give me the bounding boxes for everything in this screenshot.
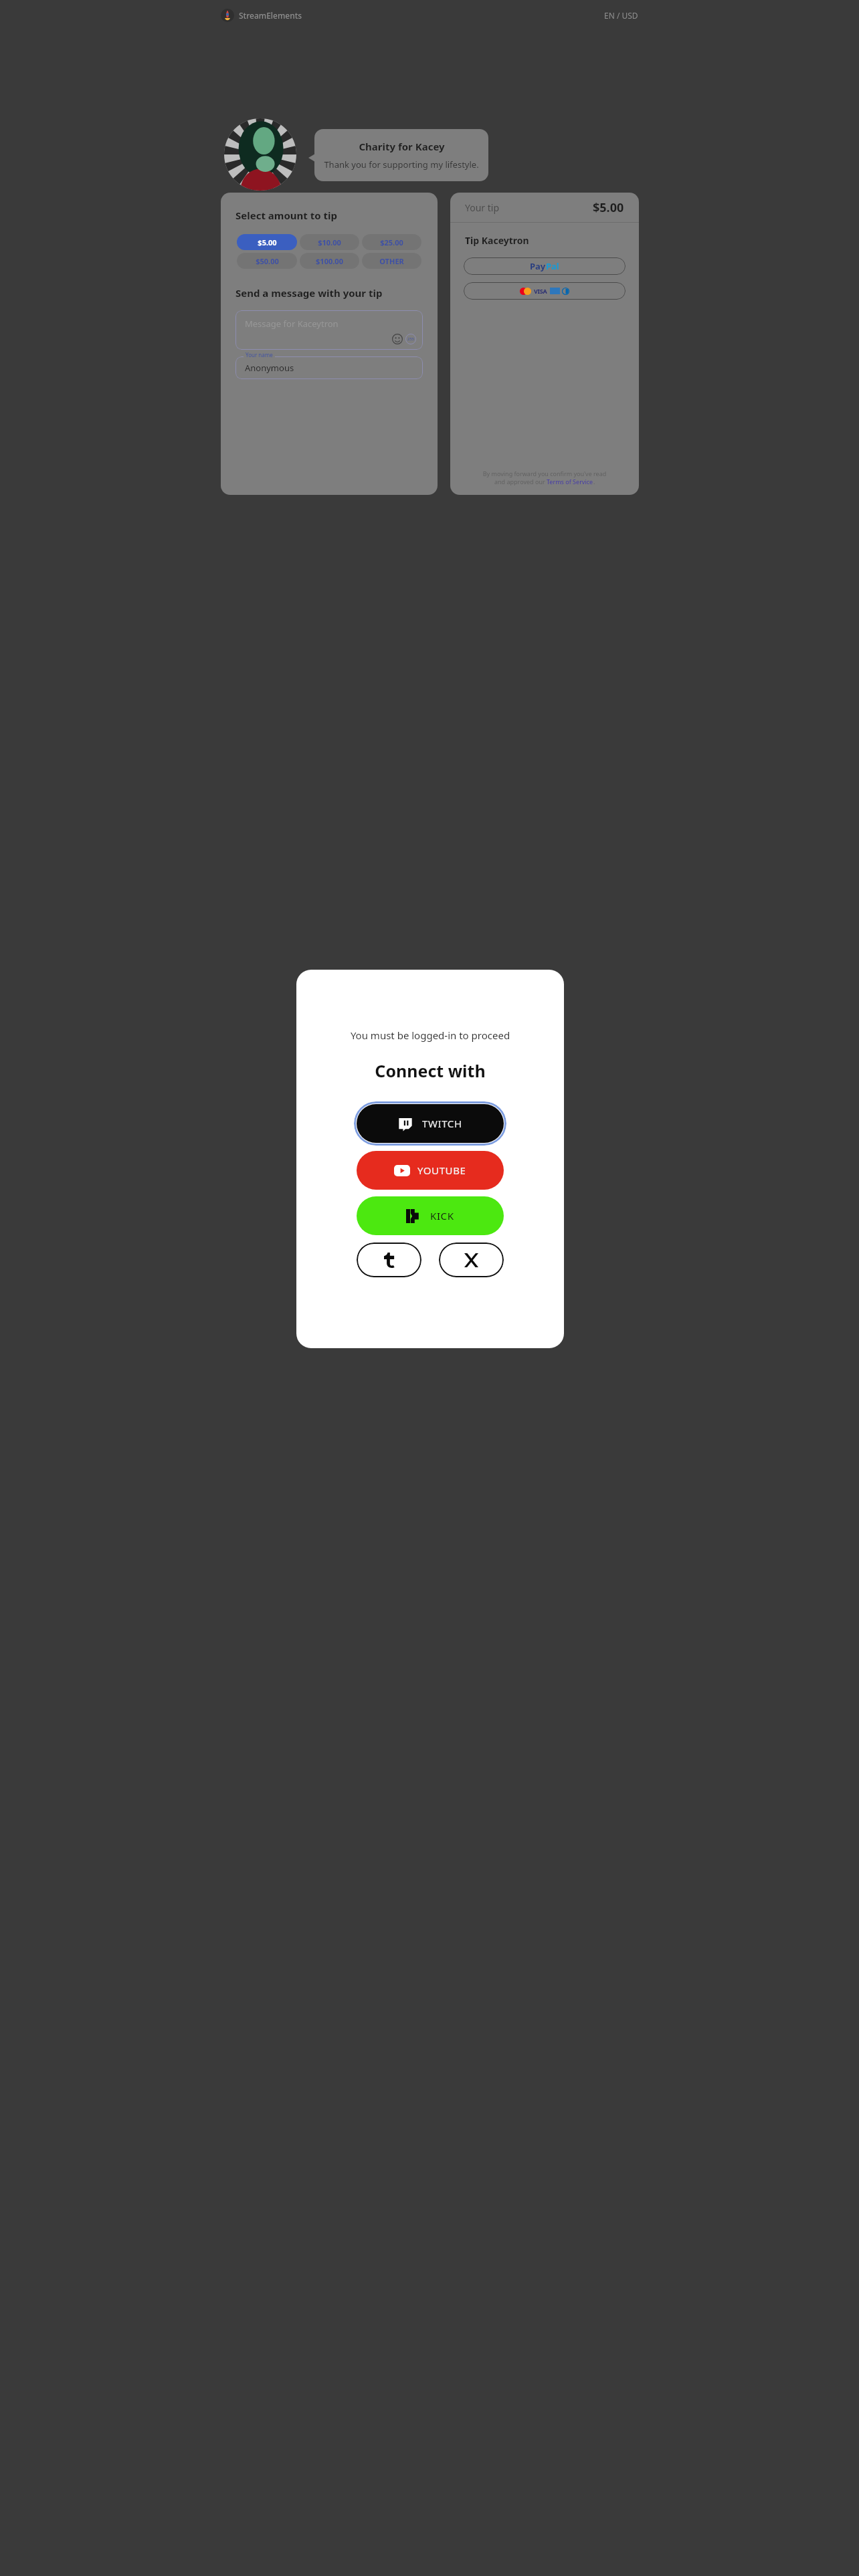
staticText: $100.00: [316, 256, 343, 266]
staticText: Pal: [546, 260, 559, 272]
staticText: Send a message with your tip: [235, 286, 383, 300]
button[interactable]: Anonymous: [235, 356, 423, 379]
button[interactable]: Connect with Tumblr: [357, 1243, 421, 1277]
button[interactable]: EN / USD: [604, 10, 638, 21]
button[interactable]: Message for Kaceytron: [235, 310, 423, 350]
staticText: By moving forward you confirm you've rea…: [464, 469, 626, 477]
button[interactable]: Connect with X: [439, 1243, 504, 1277]
button[interactable]: $5.00: [237, 234, 297, 250]
staticText: $50.00: [256, 256, 279, 266]
staticText: KICK: [430, 1209, 454, 1222]
other: Emoji: [392, 334, 403, 344]
button[interactable]: Pay with PayPal: [464, 257, 626, 275]
staticText: Select amount to tip: [235, 209, 337, 222]
staticText: and approved our: [494, 477, 547, 486]
button[interactable]: TWITCH: [357, 1104, 504, 1143]
staticText: StreamElements: [239, 10, 302, 21]
staticText: Message for Kaceytron: [245, 318, 339, 330]
staticText: 255: [407, 336, 415, 342]
staticText: $25.00: [380, 237, 403, 247]
button[interactable]: Terms of Service: [547, 477, 593, 486]
staticText: Anonymous: [245, 362, 294, 374]
staticText: $5.00: [258, 237, 277, 247]
staticText: Pay: [530, 260, 546, 272]
staticText: $10.00: [318, 237, 341, 247]
button[interactable]: $50.00: [237, 253, 297, 269]
staticText: YOUTUBE: [417, 1164, 466, 1177]
staticText: Charity for Kacey: [359, 140, 445, 153]
button[interactable]: KICK: [357, 1196, 504, 1235]
button[interactable]: $10.00: [300, 234, 359, 250]
staticText: EN / USD: [604, 10, 638, 21]
button[interactable]: Pay with credit card: [464, 282, 626, 300]
button[interactable]: $25.00: [362, 234, 421, 250]
button[interactable]: $100.00: [300, 253, 359, 269]
staticText: Terms of Service: [547, 477, 593, 486]
button[interactable]: StreamElements: [221, 9, 302, 22]
staticText: VISA: [534, 287, 547, 295]
staticText: $5.00: [593, 199, 624, 216]
staticText: TWITCH: [422, 1117, 462, 1130]
staticText: You must be logged-in to proceed: [296, 1029, 564, 1042]
staticText: Your name: [246, 351, 273, 358]
button[interactable]: OTHER: [362, 253, 421, 269]
staticText: .: [593, 477, 595, 486]
staticText: Tip Kaceytron: [465, 234, 529, 247]
staticText: Connect with: [296, 1059, 564, 1082]
staticText: OTHER: [379, 256, 404, 266]
staticText: Your tip: [465, 201, 500, 214]
button[interactable]: YOUTUBE: [357, 1151, 504, 1190]
staticText: Thank you for supporting my lifestyle.: [324, 158, 479, 171]
